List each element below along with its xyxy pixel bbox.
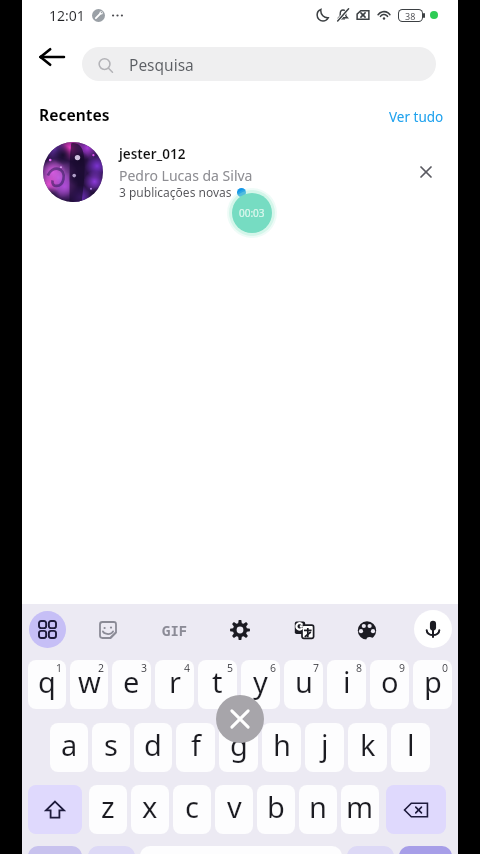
staticText: z bbox=[101, 787, 115, 826]
staticText: t bbox=[212, 662, 223, 701]
staticText: h bbox=[273, 725, 291, 764]
button[interactable]: n bbox=[299, 785, 337, 834]
button[interactable]: Remove bbox=[409, 155, 443, 189]
staticText: 1 bbox=[56, 661, 63, 675]
staticText: 3 publicações novas bbox=[119, 184, 232, 200]
staticText: GIF bbox=[162, 621, 188, 640]
button[interactable]: Backspace bbox=[386, 785, 446, 834]
button[interactable]: z bbox=[89, 785, 127, 834]
button[interactable]: m bbox=[341, 785, 379, 834]
button[interactable]: b bbox=[257, 785, 295, 834]
staticText: b bbox=[267, 787, 285, 826]
button[interactable]: Back bbox=[28, 40, 76, 74]
staticText: u bbox=[295, 662, 313, 701]
button[interactable]: Stickers bbox=[89, 611, 127, 649]
staticText: q bbox=[38, 662, 56, 701]
button[interactable]: Emoji bbox=[88, 846, 135, 854]
button[interactable]: i bbox=[327, 660, 366, 709]
staticText: 9 bbox=[399, 661, 406, 675]
button[interactable]: 00:03 bbox=[232, 193, 272, 233]
staticText: 7 bbox=[313, 661, 320, 675]
staticText: 0 bbox=[442, 661, 449, 675]
button[interactable]: y bbox=[241, 660, 280, 709]
button[interactable]: Settings bbox=[221, 611, 259, 649]
staticText: Ver tudo bbox=[389, 108, 444, 126]
staticText: Pesquisa bbox=[129, 54, 194, 75]
staticText: d bbox=[144, 725, 162, 764]
staticText: a bbox=[61, 725, 78, 764]
button[interactable]: Voice input bbox=[414, 610, 452, 648]
button[interactable]: v bbox=[215, 785, 253, 834]
staticText: y bbox=[253, 662, 268, 701]
staticText: 3 bbox=[141, 661, 148, 675]
button[interactable]: Symbols bbox=[28, 846, 82, 854]
staticText: i bbox=[343, 662, 351, 701]
staticText: c bbox=[185, 787, 199, 826]
button[interactable]: o bbox=[370, 660, 409, 709]
button[interactable]: g bbox=[219, 723, 258, 772]
button[interactable]: d bbox=[134, 723, 172, 772]
button[interactable]: Shift bbox=[28, 785, 82, 834]
button[interactable]: Symbols bbox=[29, 611, 66, 648]
button[interactable]: h bbox=[262, 723, 301, 772]
button[interactable]: p bbox=[413, 660, 452, 709]
staticText: j bbox=[321, 725, 329, 764]
staticText: l bbox=[407, 725, 415, 764]
button[interactable]: e bbox=[112, 660, 151, 709]
button[interactable]: GIF bbox=[156, 611, 194, 649]
button[interactable]: t bbox=[198, 660, 237, 709]
staticText: Recentes bbox=[39, 104, 110, 125]
staticText: f bbox=[191, 725, 201, 764]
staticText: r bbox=[169, 662, 181, 701]
staticText: p bbox=[424, 662, 442, 701]
staticText: o bbox=[381, 662, 399, 701]
button[interactable]: s bbox=[92, 723, 130, 772]
staticText: k bbox=[360, 725, 376, 764]
staticText: g bbox=[230, 725, 248, 764]
staticText: e bbox=[123, 662, 140, 701]
staticText: w bbox=[78, 662, 101, 701]
button[interactable]: Theme bbox=[348, 611, 386, 649]
button[interactable]: l bbox=[391, 723, 430, 772]
staticText: 38 bbox=[405, 10, 416, 21]
staticText: x bbox=[142, 787, 158, 826]
staticText: v bbox=[227, 787, 242, 826]
button[interactable]: Period bbox=[347, 846, 394, 854]
staticText: 12:01 bbox=[49, 6, 85, 25]
button[interactable]: Ver tudo bbox=[384, 104, 448, 130]
staticText: m bbox=[346, 787, 374, 826]
button[interactable]: Enter bbox=[399, 846, 452, 854]
button[interactable]: Pesquisa bbox=[82, 47, 436, 81]
staticText: 6 bbox=[270, 661, 277, 675]
button[interactable]: q bbox=[28, 660, 66, 709]
staticText: 00:03 bbox=[239, 206, 265, 220]
button[interactable]: c bbox=[173, 785, 211, 834]
staticText: n bbox=[309, 787, 327, 826]
staticText: s bbox=[104, 725, 118, 764]
button[interactable]: r bbox=[155, 660, 194, 709]
staticText: 5 bbox=[227, 661, 234, 675]
button[interactable]: f bbox=[176, 723, 215, 772]
staticText: Pedro Lucas da Silva bbox=[119, 166, 253, 185]
button[interactable]: j bbox=[305, 723, 344, 772]
button[interactable]: a bbox=[50, 723, 88, 772]
staticText: 4 bbox=[184, 661, 191, 675]
staticText: 8 bbox=[356, 661, 363, 675]
button[interactable]: Stop recording bbox=[216, 695, 264, 743]
staticText: jester_012 bbox=[119, 145, 186, 163]
button[interactable]: jester_012 bbox=[22, 140, 458, 204]
button[interactable]: k bbox=[348, 723, 387, 772]
button[interactable]: w bbox=[70, 660, 108, 709]
button[interactable]: u bbox=[284, 660, 323, 709]
button[interactable]: Translate bbox=[285, 611, 323, 649]
button[interactable]: x bbox=[131, 785, 169, 834]
staticText: 2 bbox=[98, 661, 105, 675]
